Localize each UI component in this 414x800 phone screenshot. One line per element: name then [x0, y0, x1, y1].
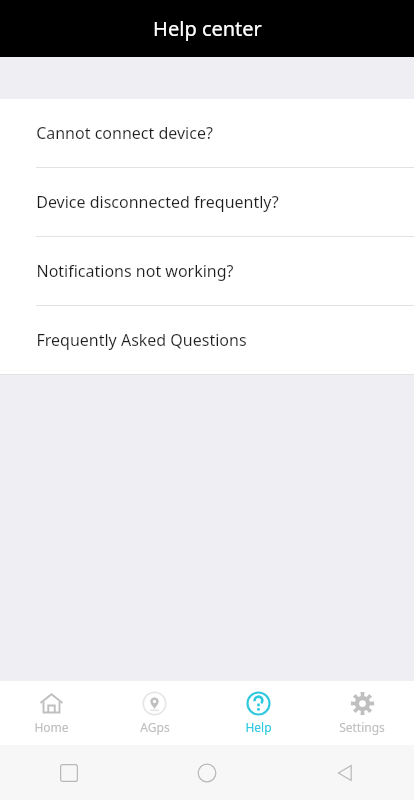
button[interactable]: Home: [138, 745, 276, 800]
staticText: Frequently Asked Questions: [36, 329, 247, 351]
staticText: Home: [34, 719, 69, 735]
button[interactable]: Frequently Asked Questions: [0, 306, 414, 375]
staticText: Device disconnected frequently?: [36, 191, 279, 213]
button[interactable]: Recent apps: [0, 745, 138, 800]
button[interactable]: Device disconnected frequently?: [0, 168, 414, 237]
staticText: Notifications not working?: [36, 260, 234, 282]
button[interactable]: Home: [0, 683, 103, 743]
staticText: AGps: [140, 719, 170, 735]
button[interactable]: Cannot connect device?: [0, 99, 414, 168]
button[interactable]: AGps: [103, 683, 206, 743]
button[interactable]: Notifications not working?: [0, 237, 414, 306]
staticText: Help: [245, 719, 272, 735]
staticText: Settings: [339, 719, 385, 735]
button[interactable]: Settings: [310, 683, 414, 743]
staticText: Cannot connect device?: [36, 122, 213, 144]
button[interactable]: Back: [276, 745, 414, 800]
button[interactable]: Help: [206, 683, 310, 743]
staticText: Help center: [153, 15, 262, 42]
